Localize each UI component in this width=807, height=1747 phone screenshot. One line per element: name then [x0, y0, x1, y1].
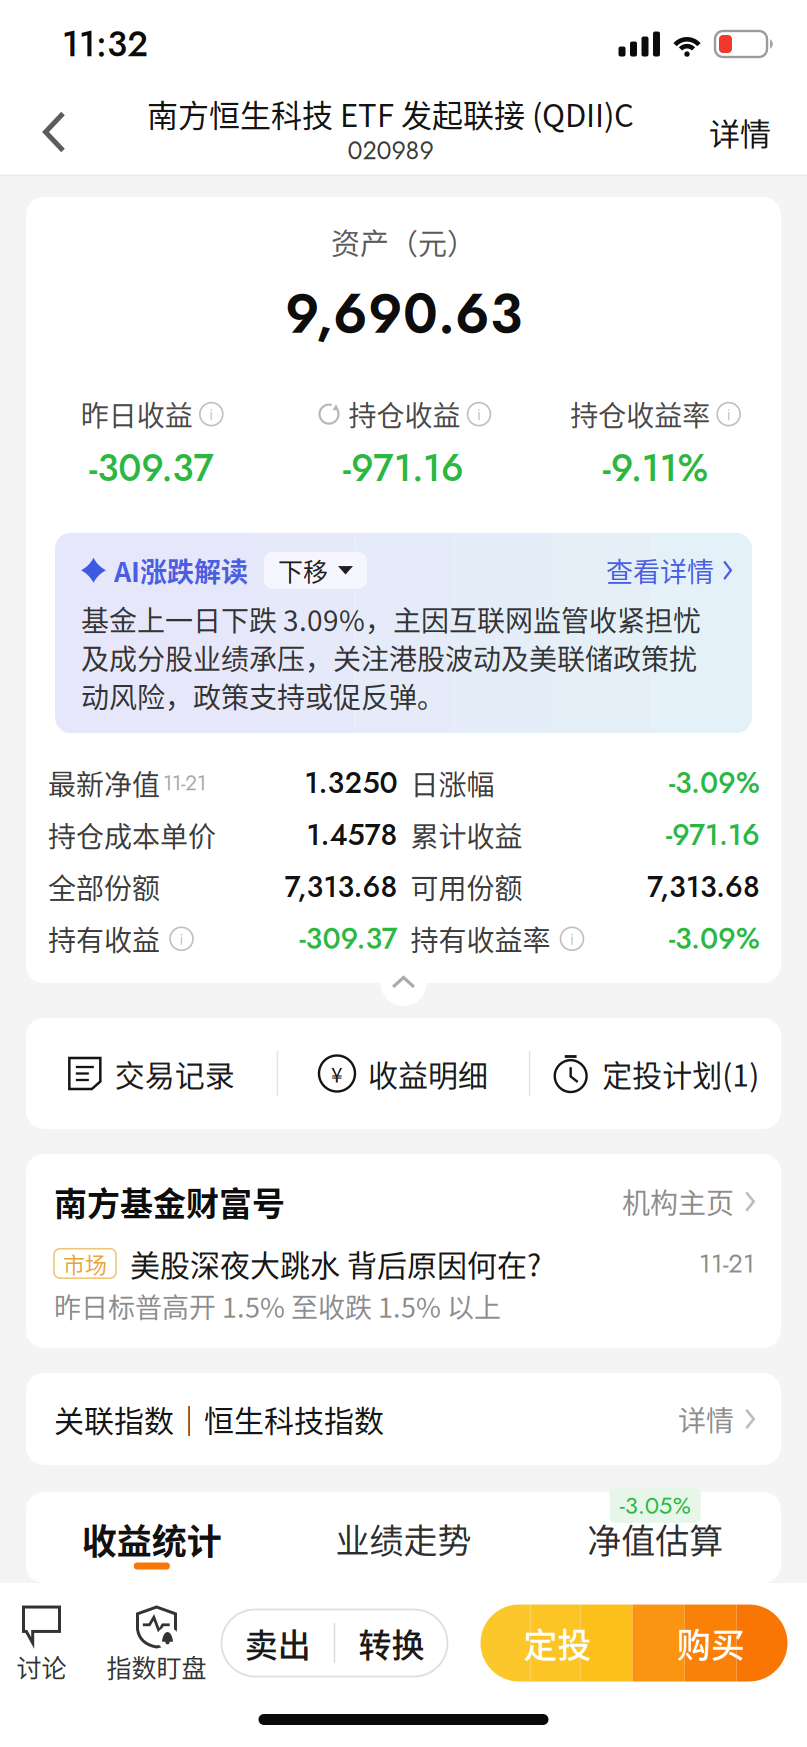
staticText: i: [209, 406, 213, 422]
staticText: 指数盯盘: [106, 1652, 206, 1681]
button[interactable]: 查看详情: [606, 555, 732, 586]
button[interactable]: 定投计划(1): [530, 1018, 781, 1129]
button[interactable]: ¥: [278, 1018, 529, 1129]
staticText: 020989: [347, 132, 433, 168]
staticText: 关联指数｜恒生科技指数: [54, 1402, 384, 1436]
staticText: AI涨跌解读: [114, 555, 248, 586]
staticText: -3.09%: [669, 762, 760, 804]
staticText: 净值估算: [587, 1519, 723, 1558]
staticText: 7,313.68: [284, 866, 397, 908]
staticText: 及成分股业绩承压，关注港股波动及美联储政策扰: [81, 641, 697, 674]
staticText: 讨论: [16, 1652, 66, 1681]
staticText: 全部份额: [48, 871, 160, 903]
staticText: 持仓收益率: [570, 398, 710, 430]
button[interactable]: 关联指数｜恒生科技指数: [0, 1373, 807, 1465]
staticText: 11:32: [62, 19, 148, 69]
staticText: -3.09%: [669, 918, 760, 960]
staticText: 卖出: [245, 1624, 311, 1662]
button[interactable]: Collapse: [373, 960, 433, 1006]
staticText: 查看详情: [606, 555, 714, 586]
button[interactable]: 收益统计: [26, 1519, 278, 1570]
staticText: 9,690.63: [285, 275, 522, 353]
staticText: 持有收益率: [410, 922, 550, 955]
staticText: 美股深夜大跳水 背后原因何在?: [130, 1246, 541, 1281]
staticText: 转换: [358, 1624, 424, 1662]
staticText: 南方恒生科技 ETF 发起联接 (QDII)C: [147, 95, 634, 131]
staticText: 机构主页: [622, 1185, 734, 1218]
staticText: 可用份额: [410, 871, 522, 903]
button[interactable]: Back: [0, 88, 108, 176]
staticText: ¥: [331, 1061, 343, 1086]
staticText: 定投: [523, 1623, 591, 1663]
staticText: -971.16: [666, 814, 760, 856]
staticText: -3.05%: [620, 1488, 691, 1523]
button[interactable]: 业绩走势: [278, 1519, 529, 1570]
staticText: -309.37: [299, 918, 397, 960]
staticText: 购买: [677, 1623, 745, 1663]
staticText: 资产（元）: [331, 225, 476, 259]
button[interactable]: 下移: [264, 552, 367, 589]
staticText: 持仓收益: [348, 398, 460, 430]
staticText: 业绩走势: [335, 1519, 471, 1558]
staticText: 日涨幅: [410, 767, 494, 799]
button[interactable]: 转换: [335, 1609, 447, 1676]
staticText: 详情: [678, 1403, 734, 1435]
button[interactable]: 购买: [634, 1604, 787, 1681]
staticText: 交易记录: [115, 1056, 235, 1091]
staticText: -971.16: [343, 441, 464, 495]
button[interactable]: 定投: [480, 1604, 634, 1681]
staticText: 持仓成本单价: [48, 819, 216, 851]
staticText: 南方基金财富号: [54, 1182, 285, 1221]
staticText: 收益统计: [82, 1519, 222, 1559]
staticText: 收益明细: [368, 1056, 488, 1091]
staticText: 详情: [709, 114, 771, 150]
staticText: 7,313.68: [647, 866, 760, 908]
button[interactable]: 指数盯盘: [99, 1583, 213, 1703]
staticText: i: [477, 406, 481, 422]
staticText: 1.4578: [306, 814, 397, 856]
staticText: i: [179, 931, 183, 947]
button[interactable]: 讨论: [1, 1583, 81, 1703]
button[interactable]: 净值估算: [529, 1519, 781, 1570]
staticText: 下移: [278, 556, 328, 585]
staticText: 定投计划(1): [602, 1056, 759, 1091]
staticText: 1.3250: [304, 762, 397, 804]
button[interactable]: 市场: [54, 1245, 755, 1321]
staticText: 昨日标普高开 1.5% 至收跌 1.5% 以上: [54, 1290, 501, 1322]
staticText: 累计收益: [410, 819, 522, 851]
staticText: -309.37: [89, 441, 214, 495]
staticText: i: [570, 931, 574, 947]
button[interactable]: 详情: [673, 88, 807, 176]
staticText: 11-21: [699, 1245, 755, 1282]
button[interactable]: 交易记录: [26, 1018, 277, 1129]
staticText: 市场: [63, 1251, 107, 1276]
staticText: 持有收益: [48, 922, 160, 955]
staticText: 最新净值: [48, 767, 160, 799]
button[interactable]: 卖出: [221, 1609, 334, 1676]
staticText: 昨日收益: [81, 398, 193, 430]
staticText: 基金上一日下跌 3.09%，主因互联网监管收紧担忧: [81, 603, 701, 635]
staticText: 动风险，政策支持或促反弹。: [81, 680, 445, 712]
button[interactable]: 机构主页: [622, 1185, 755, 1218]
staticText: 11-21: [163, 768, 206, 798]
staticText: i: [727, 406, 731, 422]
staticText: -9.11%: [603, 441, 708, 495]
